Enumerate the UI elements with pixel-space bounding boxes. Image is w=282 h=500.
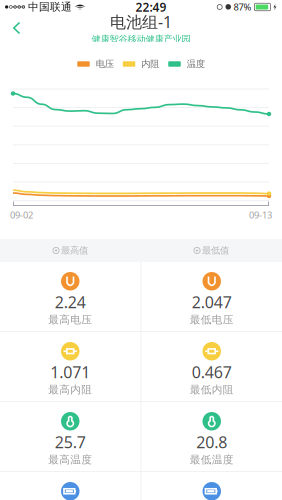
staticText: 内阻 <box>141 58 159 70</box>
button[interactable]: 2.24 <box>0 262 140 331</box>
button[interactable]: Back <box>0 14 34 42</box>
staticText: 温度 <box>187 58 205 70</box>
staticText: 中国联通 <box>28 0 72 13</box>
staticText: 最低电压 <box>190 313 234 326</box>
staticText: 健康智谷移动健康产业园 <box>91 33 190 45</box>
staticText: 最高电压 <box>48 313 92 326</box>
staticText: 87% <box>233 1 251 13</box>
staticText: 最低内阻 <box>190 383 234 396</box>
staticText: 最低值 <box>202 245 229 256</box>
staticText: 09-13 <box>249 209 272 221</box>
staticText: 最高值 <box>61 245 88 256</box>
staticText: 最高温度 <box>48 453 92 466</box>
button[interactable]: 0.467 <box>141 332 282 401</box>
button[interactable]: 25.7 <box>0 402 140 471</box>
staticText: 25.7 <box>55 431 86 453</box>
staticText: 电压 <box>96 58 114 70</box>
staticText: 09-02 <box>10 209 33 221</box>
staticText: 最低温度 <box>190 453 234 466</box>
button[interactable]: 1.071 <box>0 332 140 401</box>
staticText: 1.071 <box>50 361 90 383</box>
staticText: 22:49 <box>135 0 166 15</box>
staticText: 20.8 <box>196 431 227 453</box>
staticText: 最高内阻 <box>48 383 92 396</box>
staticText: 2.047 <box>192 291 232 313</box>
button[interactable]: 12.4 <box>0 472 140 500</box>
staticText: 0.467 <box>192 361 232 383</box>
staticText: 电池组-1 <box>110 11 172 32</box>
button[interactable]: 20.8 <box>141 402 282 471</box>
button[interactable]: 11.9 <box>141 472 282 500</box>
staticText: 2.24 <box>55 291 86 313</box>
button[interactable]: 2.047 <box>141 262 282 331</box>
